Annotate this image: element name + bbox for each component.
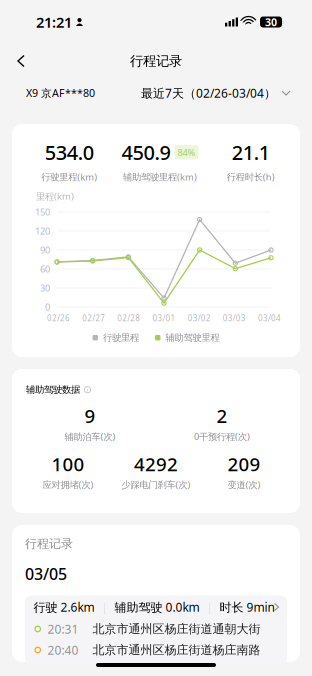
staticText: | (206, 600, 212, 614)
staticText: 21:21 (36, 12, 72, 32)
staticText: 辅助驾驶数据 (26, 384, 80, 395)
staticText: 变道(次) (227, 478, 260, 491)
staticText: 辅助驾驶 0.0km (114, 599, 199, 615)
staticText: 北京市通州区杨庄街道杨庄南路 (92, 643, 260, 657)
staticText: 9 (84, 403, 95, 428)
staticText: 02/26 (47, 313, 70, 324)
staticText: 4292 (134, 452, 178, 476)
staticText: 时长 9min (219, 599, 274, 615)
staticText: 02/28 (117, 313, 140, 324)
staticText: 辅助泊车(次) (64, 430, 115, 443)
staticText: 0 (45, 301, 50, 313)
staticText: 行驶 2.6km (33, 599, 94, 615)
staticText: 行程时长(h) (227, 171, 275, 183)
staticText: 209 (227, 452, 260, 476)
staticText: 534.0 (45, 139, 94, 166)
staticText: 450.9 (121, 139, 170, 166)
staticText: 行驶里程 (103, 332, 139, 343)
staticText: 03/02 (188, 313, 211, 324)
button[interactable]: X9 京AF***80 (26, 86, 95, 100)
staticText: X9 京AF***80 (26, 86, 95, 100)
staticText: 150 (35, 206, 50, 218)
staticText: 84% (177, 146, 195, 158)
staticText: 2 (216, 403, 227, 428)
staticText: 90 (40, 244, 50, 256)
staticText: 北京市通州区杨庄街道通朝大街 (92, 622, 260, 636)
staticText: 20:31 (47, 621, 78, 637)
staticText: 03/03 (223, 313, 246, 324)
staticText: 60 (40, 263, 50, 275)
staticText: 行程记录 (130, 53, 182, 69)
staticText: 03/05 (25, 563, 67, 584)
staticText: 100 (51, 452, 84, 476)
staticText: 0干预行程(次) (194, 430, 250, 443)
staticText: 30 (40, 282, 50, 294)
staticText: 少踩电门刹车(次) (121, 478, 190, 491)
staticText: 辅助驾驶里程 (165, 332, 219, 343)
button[interactable]: 返回 (0, 46, 42, 75)
staticText: 30 (265, 15, 277, 29)
staticText: | (101, 600, 107, 614)
staticText: 120 (35, 225, 50, 237)
staticText: 21.1 (232, 139, 270, 166)
button[interactable]: 最近7天（02/26-03/04） (141, 85, 290, 101)
staticText: 20:40 (47, 642, 78, 658)
staticText: 行驶里程(km) (41, 171, 97, 183)
staticText: 辅助驾驶里程(km) (123, 171, 197, 183)
button[interactable]: 行驶 2.6km (25, 595, 287, 618)
staticText: 应对拥堵(次) (42, 478, 93, 491)
staticText: 03/01 (152, 313, 175, 324)
staticText: 里程(km) (36, 190, 74, 202)
staticText: 最近7天（02/26-03/04） (141, 85, 276, 101)
staticText: 02/27 (82, 313, 105, 324)
staticText: 03/04 (258, 313, 281, 324)
staticText: 行程记录 (25, 536, 73, 551)
